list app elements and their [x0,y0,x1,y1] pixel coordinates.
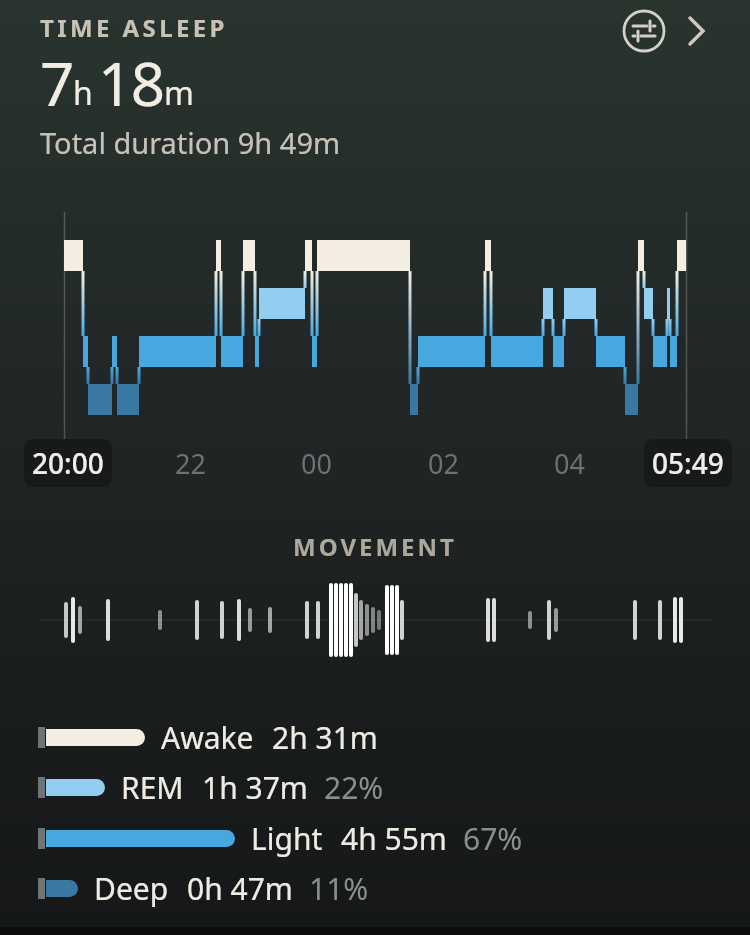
staticText: TIME ASLEEP [40,11,228,44]
staticText: h [73,71,93,115]
staticText: 22% [324,767,384,808]
staticText: 2h 31m [272,717,378,758]
button[interactable]: 05:49 [644,439,732,487]
button[interactable]: Awake [38,712,378,762]
staticText: Deep [94,868,169,909]
staticText: 22 [175,445,206,482]
staticText: 00 [301,445,332,482]
staticText: 4h 55m [341,818,447,859]
staticText: 7 [40,42,73,124]
staticText: 02 [428,445,459,482]
button[interactable]: REM [38,762,384,812]
button[interactable]: 20:00 [24,439,112,487]
staticText: 18 [98,42,164,124]
staticText: 04 [554,445,585,482]
staticText: 05:49 [652,444,724,482]
staticText: 11% [309,868,369,909]
button[interactable]: Deep [38,863,369,913]
staticText: 67% [463,818,523,859]
staticText: 20:00 [32,444,104,482]
staticText: 0h 47m [187,868,293,909]
staticText: Awake [161,717,254,758]
button[interactable] [676,10,716,50]
staticText: REM [121,767,184,808]
button[interactable]: Light [38,813,523,863]
staticText: m [164,71,194,115]
staticText: MOVEMENT [0,530,750,563]
staticText: 1h 37m [202,767,308,808]
button[interactable] [620,7,668,55]
staticText: Total duration 9h 49m [40,123,341,162]
staticText: Light [251,818,323,859]
